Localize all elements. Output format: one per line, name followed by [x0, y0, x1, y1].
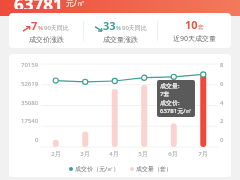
- staticText: %: [116, 24, 121, 32]
- button[interactable]: 10: [158, 13, 231, 48]
- staticText: 63781元/㎡: [160, 107, 192, 115]
- staticText: 近90天成交量: [173, 34, 217, 44]
- staticText: 成交价（元/㎡）: [75, 165, 120, 173]
- button[interactable]: 成交价（元/㎡）: [69, 165, 120, 173]
- staticText: 5月: [138, 150, 148, 158]
- staticText: 17540: [21, 117, 39, 125]
- button[interactable]: 下跌: [84, 13, 157, 48]
- staticText: 0: [35, 136, 39, 144]
- staticText: 6: [220, 80, 224, 88]
- staticText: 2月: [51, 150, 61, 158]
- staticText: 52619: [21, 80, 39, 88]
- staticText: 7: [31, 18, 38, 33]
- staticText: 90天同比: [44, 24, 69, 32]
- staticText: 90天同比: [122, 24, 147, 32]
- button[interactable]: 成交量（套）: [130, 165, 172, 173]
- staticText: 10: [185, 17, 198, 32]
- staticText: 成交价:: [160, 99, 180, 107]
- staticText: 35080: [21, 99, 39, 107]
- staticText: 2: [220, 117, 224, 125]
- other: 下跌: [95, 26, 102, 32]
- staticText: 63781: [14, 0, 63, 9]
- staticText: 元/㎡: [66, 0, 85, 8]
- staticText: 7月: [198, 150, 208, 158]
- staticText: 7套: [160, 90, 170, 98]
- staticText: 6月: [168, 150, 178, 158]
- staticText: 33: [103, 18, 116, 33]
- staticText: 成交量（套）: [136, 165, 172, 173]
- staticText: 3月: [80, 150, 90, 158]
- staticText: 8: [220, 61, 224, 69]
- staticText: 4月: [109, 150, 119, 158]
- staticText: 成交量:: [160, 82, 180, 90]
- other: 上涨: [23, 26, 30, 32]
- staticText: 0: [220, 136, 224, 144]
- staticText: 70159: [21, 61, 39, 69]
- staticText: 套: [198, 23, 204, 31]
- button[interactable]: 70159: [9, 54, 231, 177]
- button[interactable]: 上涨: [9, 13, 83, 48]
- staticText: 4: [220, 99, 224, 107]
- staticText: 成交价涨跌: [29, 35, 64, 44]
- staticText: %: [38, 24, 43, 32]
- staticText: 成交量涨跌: [103, 35, 138, 44]
